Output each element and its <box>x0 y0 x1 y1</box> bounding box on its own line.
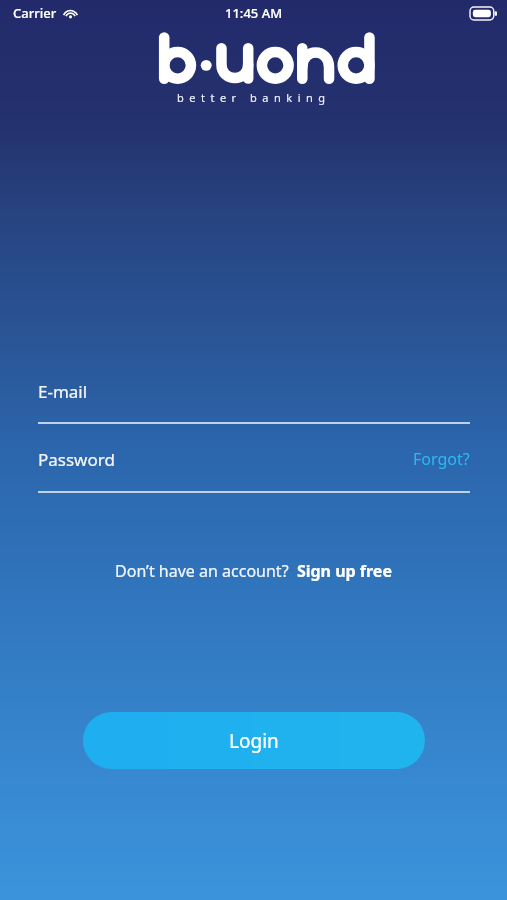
staticText: Password <box>38 448 115 471</box>
staticText: Login <box>229 728 279 754</box>
staticText: Forgot? <box>413 448 470 470</box>
button[interactable]: Password <box>38 448 115 471</box>
staticText: Don’t have an account? Sign up free <box>115 560 392 582</box>
staticText: Carrier <box>13 4 57 22</box>
button[interactable]: Don’t have an account? Sign up free <box>105 556 402 586</box>
staticText: better banking <box>177 90 331 105</box>
button[interactable]: Forgot? <box>413 448 470 470</box>
button[interactable]: E-mail <box>38 380 470 424</box>
button[interactable]: Login <box>83 712 425 769</box>
staticText: E-mail <box>38 380 88 403</box>
staticText: 11:45 AM <box>225 4 283 22</box>
